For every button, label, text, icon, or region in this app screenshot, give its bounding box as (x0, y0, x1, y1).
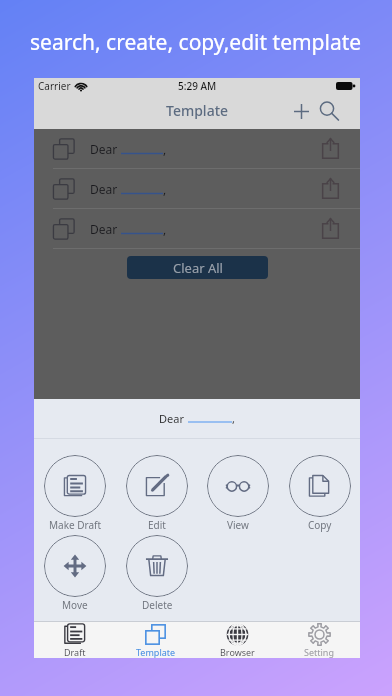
button[interactable]: Move (34, 535, 116, 612)
button[interactable]: Copy (279, 455, 361, 532)
button[interactable]: Template (115, 622, 196, 658)
staticText: Edit (148, 518, 166, 532)
button[interactable]: Share (320, 178, 341, 199)
staticText: Delete (142, 598, 173, 612)
button[interactable]: Share (320, 218, 341, 239)
staticText: , (163, 181, 167, 197)
button[interactable]: Search (317, 99, 341, 123)
staticText: Clear All (173, 259, 223, 277)
staticText: Dear (90, 221, 118, 237)
staticText: Move (62, 598, 88, 612)
button[interactable]: Delete (116, 535, 198, 612)
staticText: , (163, 141, 167, 157)
button[interactable]: Draft (34, 622, 115, 658)
button[interactable]: Edit (116, 455, 198, 532)
button[interactable]: Clear All (127, 256, 268, 279)
staticText: , (163, 221, 167, 237)
staticText: Make Draft (49, 518, 102, 532)
staticText: View (227, 518, 249, 532)
staticText: Draft (64, 646, 86, 658)
button[interactable]: Dear (34, 209, 360, 249)
button[interactable]: Share (320, 138, 341, 159)
staticText: Carrier (38, 79, 71, 93)
staticText: search, create, copy,edit template (30, 28, 362, 57)
staticText: Copy (308, 518, 332, 532)
staticText: , (232, 411, 235, 426)
button[interactable]: Dear (34, 129, 360, 169)
button[interactable]: Setting (278, 622, 360, 658)
staticText: 5:29 AM (178, 79, 217, 93)
button[interactable]: View (197, 455, 279, 532)
staticText: Template (166, 101, 229, 120)
staticText: Dear (90, 141, 118, 157)
staticText: Browser (220, 646, 255, 658)
staticText: Dear (90, 181, 118, 197)
staticText: Dear (159, 411, 184, 426)
button[interactable]: Add template (290, 100, 312, 122)
staticText: Setting (304, 646, 334, 658)
button[interactable]: Make Draft (34, 455, 116, 532)
button[interactable]: Browser (196, 622, 278, 658)
button[interactable]: Dear (34, 169, 360, 209)
staticText: Template (136, 646, 176, 658)
